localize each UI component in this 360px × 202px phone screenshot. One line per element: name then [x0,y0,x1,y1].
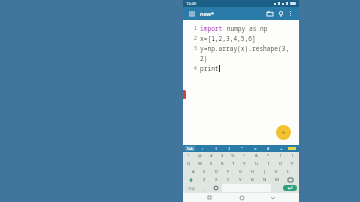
staticText: G [239,169,243,175]
button[interactable]: A [188,168,198,175]
button[interactable]: U [251,160,262,167]
button[interactable]: E [206,160,216,167]
staticText: . [276,186,278,191]
button[interactable]: Z [199,176,210,183]
button[interactable]: Tab [187,146,193,151]
button[interactable]: Backspace [283,176,298,183]
staticText: C [227,177,230,183]
staticText: x=[1,2,3,4,5,6] [200,34,256,42]
button[interactable]: % [228,153,238,159]
button[interactable]: W [195,160,205,167]
staticText: Z [203,177,206,183]
button[interactable]: Y [239,160,250,167]
button[interactable]: ^ [239,153,250,159]
staticText: % [231,153,235,159]
staticText: A [192,169,195,175]
staticText: ( [280,153,282,159]
staticText: ^ [243,153,246,159]
button[interactable]: ( [209,145,223,152]
button[interactable]: @ [195,153,205,159]
button[interactable]: Run script [276,125,291,140]
staticText: D [215,169,219,175]
staticText: W [198,161,202,167]
button[interactable]: = [249,145,262,152]
button[interactable]: N [259,176,270,183]
staticText: # [210,153,213,159]
button[interactable]: Save file [265,9,274,18]
staticText: B [251,177,254,183]
button[interactable]: T [228,160,238,167]
staticText: H [251,169,255,175]
staticText: U [255,161,259,167]
button[interactable]: R [217,160,227,167]
button[interactable]: Go to line [276,9,285,18]
staticText: # [267,146,270,151]
button[interactable]: ?1☺ [185,184,199,192]
button[interactable]: ! [184,153,194,159]
button[interactable]: Comma [201,184,209,192]
button[interactable]: ( [275,153,286,159]
staticText: P [291,161,294,167]
button[interactable]: Recent apps [205,193,214,202]
button[interactable]: Emoji [211,184,220,192]
button[interactable]: More options [286,9,295,18]
staticText: ) [292,153,294,159]
button[interactable]: B [247,176,258,183]
staticText: F [227,169,230,175]
staticText: V [239,177,242,183]
button[interactable]: ) [287,153,298,159]
staticText: M [275,177,279,183]
staticText: 2) [200,54,208,62]
button[interactable]: # [206,153,216,159]
button[interactable]: Back [268,193,277,202]
staticText: L [287,169,290,175]
staticText: J [264,169,266,175]
staticText: K [275,169,278,175]
button[interactable]: + [275,145,288,152]
button[interactable]: & [251,153,262,159]
staticText: ?1☺ [188,186,196,191]
button[interactable]: H [247,168,258,175]
button[interactable]: : [195,145,209,152]
button[interactable]: I [263,160,274,167]
button[interactable]: M [271,176,282,183]
staticText: E [210,161,213,167]
button[interactable]: $ [217,153,227,159]
staticText: $ [221,153,224,159]
button[interactable]: G [235,168,246,175]
button[interactable]: V [235,176,246,183]
staticText: ( [215,146,218,151]
staticText: O [279,161,283,167]
button[interactable]: Home [237,193,246,202]
button[interactable]: " [236,145,249,152]
button[interactable]: * [263,153,274,159]
button[interactable]: L [283,168,294,175]
button[interactable]: C [223,176,234,183]
staticText: 12:40 [186,1,197,6]
staticText: = [254,146,257,151]
button[interactable]: P [287,160,298,167]
button[interactable]: Enter [283,185,297,191]
button[interactable]: F [223,168,234,175]
button[interactable]: K [271,168,282,175]
button[interactable]: Q [184,160,194,167]
staticText: 1 [183,24,197,32]
staticText: & [255,153,259,159]
staticText: Y [243,161,246,167]
staticText: numpy as np [223,24,268,32]
button[interactable]: X [211,176,222,183]
button[interactable]: S [199,168,210,175]
button[interactable]: Period [273,184,281,192]
button[interactable]: O [275,160,286,167]
button[interactable]: ) [223,145,236,152]
staticText: 2 [183,34,197,42]
button[interactable]: Shift [184,176,198,183]
button[interactable]: # [262,145,275,152]
staticText: : [201,146,204,151]
button[interactable]: Open navigation menu [187,9,196,18]
button[interactable]: J [259,168,270,175]
button[interactable]: D [211,168,222,175]
